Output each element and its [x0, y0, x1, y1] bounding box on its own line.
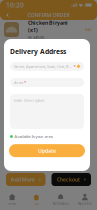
staticText: Street, Apartment, Suite, Unit, Building…: [14, 64, 72, 69]
staticText: Enter Description: [14, 97, 44, 103]
staticText: Area: [14, 80, 23, 85]
button[interactable]: Back: [0, 10, 15, 19]
staticText: 10:20: [6, 1, 24, 9]
staticText: My profile: [78, 202, 92, 205]
button[interactable]: My profile: [73, 189, 97, 210]
button[interactable]: Notification: [48, 189, 73, 210]
staticText: *: [23, 80, 26, 85]
staticText: Add More: [11, 176, 35, 183]
staticText: Available In your area: [15, 134, 53, 139]
staticText: Checkout: [57, 176, 80, 183]
staticText: Chicken Biryani (x1): [28, 19, 68, 33]
staticText: Edit: [85, 27, 91, 32]
staticText: Home: [8, 202, 16, 205]
staticText: CONFIRM ORDER: [27, 11, 69, 19]
staticText: Update: [38, 147, 56, 154]
staticText: *: [72, 64, 75, 69]
staticText: Rs 249.00: [28, 34, 44, 40]
button[interactable]: Checkout: [51, 173, 91, 186]
button[interactable]: Home: [0, 189, 24, 210]
staticText: Notification: [53, 202, 69, 205]
button[interactable]: Add More: [6, 173, 45, 186]
staticText: Delivery Address: [10, 47, 66, 56]
button[interactable]: Update: [9, 144, 85, 157]
button[interactable]: Cart: [24, 189, 48, 210]
staticText: Cart: [34, 202, 39, 205]
